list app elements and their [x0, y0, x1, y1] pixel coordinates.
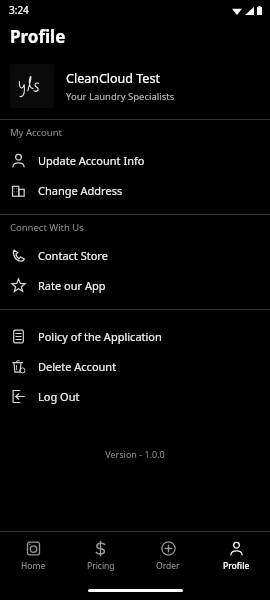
- staticText: 3:24: [9, 3, 29, 17]
- staticText: Pricing: [87, 560, 115, 572]
- staticText: Log Out: [38, 389, 80, 404]
- staticText: Version - 1.0.0: [0, 448, 270, 460]
- button[interactable]: Order: [134, 532, 202, 580]
- button[interactable]: Change Address: [0, 175, 270, 205]
- staticText: Change Address: [38, 183, 123, 198]
- button[interactable]: Home: [0, 532, 67, 580]
- button[interactable]: Delete Account: [0, 351, 270, 381]
- staticText: Rate our App: [38, 278, 106, 293]
- staticText: Policy of the Application: [38, 329, 162, 344]
- button[interactable]: Update Account Info: [0, 145, 270, 175]
- staticText: Your Laundry Specialists: [66, 90, 175, 103]
- button[interactable]: Log Out: [0, 381, 270, 411]
- button[interactable]: Contact Store: [0, 240, 270, 270]
- button[interactable]: Policy of the Application: [0, 321, 270, 351]
- button[interactable]: CleanCloud Test: [0, 53, 270, 119]
- button[interactable]: Rate our App: [0, 270, 270, 300]
- staticText: Profile: [223, 560, 250, 572]
- staticText: Order: [156, 560, 180, 572]
- button[interactable]: Profile: [202, 532, 270, 580]
- staticText: CleanCloud Test: [66, 70, 160, 87]
- staticText: My Account: [10, 126, 63, 139]
- button[interactable]: Pricing: [67, 532, 134, 580]
- staticText: Home: [21, 560, 46, 572]
- staticText: Contact Store: [38, 248, 108, 263]
- staticText: Connect With Us: [10, 221, 84, 234]
- staticText: Update Account Info: [38, 153, 145, 168]
- staticText: Profile: [10, 25, 66, 48]
- staticText: Delete Account: [38, 359, 117, 374]
